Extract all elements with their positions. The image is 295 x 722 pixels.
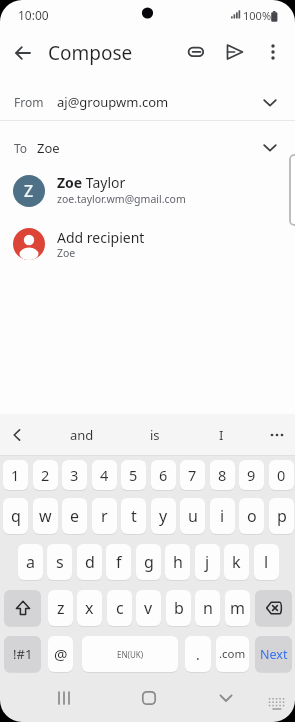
button[interactable] [131,680,167,716]
staticText: s [56,551,64,573]
button[interactable]: t [121,498,146,534]
staticText: @ [54,644,68,664]
button[interactable]: 0 [269,460,294,490]
button[interactable]: 3 [62,460,87,490]
button[interactable]: d [77,544,102,580]
staticText: aj@groupwm.com [57,93,169,111]
button[interactable]: k [224,544,249,580]
staticText: 5 [129,465,138,485]
button[interactable]: m [225,590,250,626]
button[interactable]: o [239,498,264,534]
button[interactable]: v [136,590,161,626]
staticText: is [150,426,160,444]
button[interactable]: u [180,498,205,534]
button[interactable] [256,35,290,69]
button[interactable]: From [0,78,295,120]
staticText: r [101,505,108,527]
staticText: c [116,597,124,619]
button[interactable]: 8 [210,460,235,490]
staticText: !#1 [13,645,33,663]
button[interactable]: Next [255,636,292,672]
button[interactable]: To [0,121,295,168]
staticText: m [230,597,245,619]
staticText: l [264,551,269,573]
button[interactable]: @ [48,636,73,672]
button[interactable]: g [136,544,161,580]
button[interactable] [263,692,291,716]
button[interactable]: and [47,421,117,449]
staticText: 3 [70,465,79,485]
staticText: b [174,597,184,619]
button[interactable]: 5 [121,460,146,490]
button[interactable]: p [269,498,294,534]
staticText: . [196,645,200,664]
button[interactable] [218,35,252,69]
button[interactable]: s [47,544,72,580]
button[interactable]: z [48,590,73,626]
button[interactable]: c [107,590,132,626]
button[interactable]: 4 [92,460,117,490]
staticText: Zoe [37,139,60,157]
staticText: g [144,551,154,573]
button[interactable]: f [106,544,131,580]
button[interactable]: is [120,421,190,449]
staticText: n [203,597,213,619]
staticText: To [14,140,28,156]
staticText: and [70,426,94,444]
button[interactable]: .com [216,636,249,672]
button[interactable]: 7 [180,460,205,490]
button[interactable] [4,590,41,626]
staticText: 4 [100,465,109,485]
staticText: Zoe [57,246,76,260]
staticText: Z [24,180,34,202]
button[interactable] [2,420,32,450]
button[interactable]: EN(UK) [82,636,178,672]
button[interactable] [262,420,292,450]
button[interactable]: I [186,421,256,449]
staticText: From [14,94,44,110]
staticText: EN(UK) [117,649,144,660]
staticText: Next [260,646,288,663]
staticText: e [70,505,80,527]
staticText: 8 [218,465,227,485]
staticText: w [39,505,52,527]
button[interactable]: 9 [239,460,264,490]
button[interactable]: r [92,498,117,534]
button[interactable]: 1 [3,460,28,490]
staticText: Compose [48,40,133,66]
button[interactable]: e [62,498,87,534]
button[interactable]: . [185,636,211,672]
staticText: z [57,597,65,619]
staticText: Add recipient [57,228,145,247]
button[interactable]: j [195,544,220,580]
button[interactable]: n [195,590,220,626]
staticText: d [85,551,95,573]
staticText: Zoe Taylor [57,173,126,192]
staticText: p [277,505,287,527]
button[interactable] [6,36,40,70]
button[interactable]: Add recipient [0,222,295,276]
staticText: 100% [243,8,272,23]
button[interactable]: i [210,498,235,534]
button[interactable] [179,35,213,69]
button[interactable]: x [77,590,102,626]
button[interactable]: Z [0,168,295,222]
button[interactable] [255,590,292,626]
button[interactable]: b [166,590,191,626]
staticText: 9 [247,465,256,485]
button[interactable]: 2 [33,460,58,490]
button[interactable]: !#1 [4,636,41,672]
staticText: 6 [159,465,168,485]
button[interactable]: a [18,544,43,580]
button[interactable] [46,680,82,716]
staticText: q [11,505,21,527]
button[interactable]: w [33,498,58,534]
button[interactable]: y [151,498,176,534]
button[interactable] [208,680,244,716]
button[interactable]: l [254,544,279,580]
staticText: 10:00 [18,7,49,23]
button[interactable]: h [165,544,190,580]
button[interactable]: q [3,498,28,534]
button[interactable]: 6 [151,460,176,490]
staticText: .com [219,646,246,662]
